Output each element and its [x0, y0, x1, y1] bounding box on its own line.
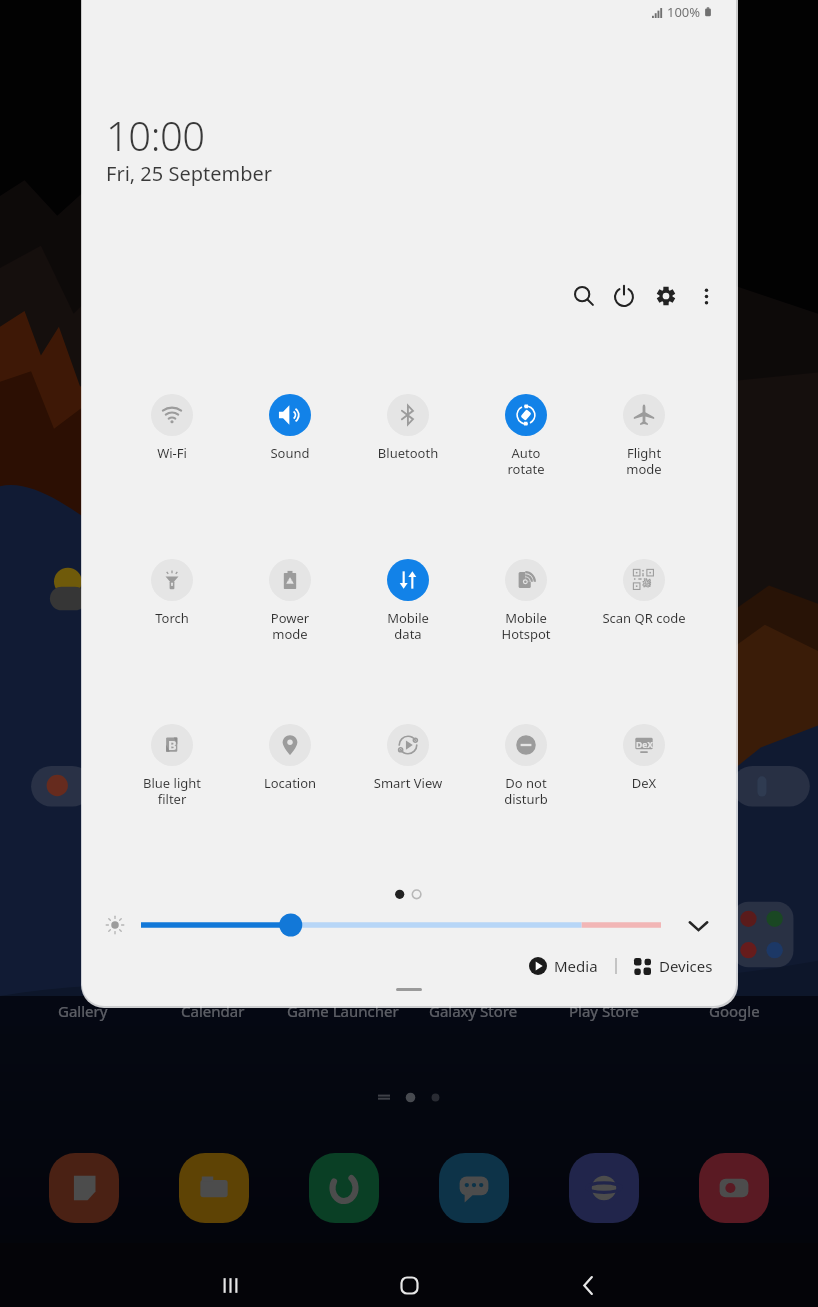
button[interactable]: Power off — [602, 274, 646, 318]
button[interactable]: Brightness slider — [141, 909, 661, 941]
button[interactable]: Location — [231, 724, 349, 800]
staticText: Calendar — [181, 1001, 245, 1021]
staticText: Media — [554, 956, 598, 976]
button[interactable]: Flight mode — [585, 394, 703, 470]
button[interactable]: Power mode — [231, 559, 349, 635]
button[interactable]: DeX — [585, 724, 703, 800]
button[interactable]: Mobile data — [349, 559, 467, 635]
staticText: Flight mode — [585, 444, 703, 478]
button[interactable]: Home — [385, 1261, 433, 1307]
staticText: Bluetooth — [349, 444, 467, 462]
button[interactable]: Settings — [644, 274, 688, 318]
button[interactable]: Smart View — [349, 724, 467, 800]
staticText: Auto rotate — [467, 444, 585, 478]
staticText: Mobile Hotspot — [467, 609, 585, 643]
button[interactable]: App icon — [439, 1153, 509, 1223]
staticText: Devices — [659, 956, 713, 976]
staticText: Sound — [231, 444, 349, 462]
button[interactable]: More options — [684, 274, 728, 318]
button[interactable]: B — [113, 724, 231, 800]
staticText: 10:00 — [106, 108, 205, 162]
button[interactable]: Brightness — [99, 909, 131, 941]
button[interactable]: App icon — [309, 1153, 379, 1223]
button[interactable]: Recents — [206, 1261, 254, 1307]
staticText: Mobile data — [349, 609, 467, 643]
staticText: Gallery — [58, 1001, 108, 1021]
button[interactable]: Torch — [113, 559, 231, 635]
button[interactable]: App icon — [699, 1153, 769, 1223]
button[interactable]: Do not disturb — [467, 724, 585, 800]
staticText: DeX — [585, 774, 703, 792]
staticText: 100% — [667, 3, 701, 21]
button[interactable]: Auto rotate — [467, 394, 585, 470]
staticText: Smart View — [349, 774, 467, 792]
button[interactable]: App icon — [49, 1153, 119, 1223]
staticText: Wi-Fi — [113, 444, 231, 462]
staticText: Blue light filter — [113, 774, 231, 808]
staticText: Google — [709, 1001, 760, 1021]
staticText: Torch — [113, 609, 231, 627]
staticText: DeX — [636, 739, 653, 751]
staticText: Game Launcher — [287, 1001, 399, 1021]
button[interactable]: Back — [564, 1261, 612, 1307]
staticText: Do not disturb — [467, 774, 585, 808]
button[interactable]: Search — [562, 274, 606, 318]
button[interactable]: Bluetooth — [349, 394, 467, 470]
button[interactable]: Scan QR code — [585, 559, 703, 635]
staticText: B — [168, 736, 177, 754]
button[interactable]: App icon — [179, 1153, 249, 1223]
button[interactable]: Sound — [231, 394, 349, 470]
button[interactable]: App icon — [569, 1153, 639, 1223]
staticText: Power mode — [231, 609, 349, 643]
button[interactable]: Wi-Fi — [113, 394, 231, 470]
button[interactable]: Mobile Hotspot — [467, 559, 585, 635]
staticText: Location — [231, 774, 349, 792]
staticText: Play Store — [569, 1001, 639, 1021]
staticText: Galaxy Store — [429, 1001, 518, 1021]
staticText: Scan QR code — [585, 609, 703, 627]
button[interactable]: Media — [526, 951, 601, 981]
button[interactable]: Expand brightness settings — [678, 905, 718, 945]
staticText: Fri, 25 September — [106, 160, 273, 187]
button[interactable]: Devices — [631, 951, 716, 981]
